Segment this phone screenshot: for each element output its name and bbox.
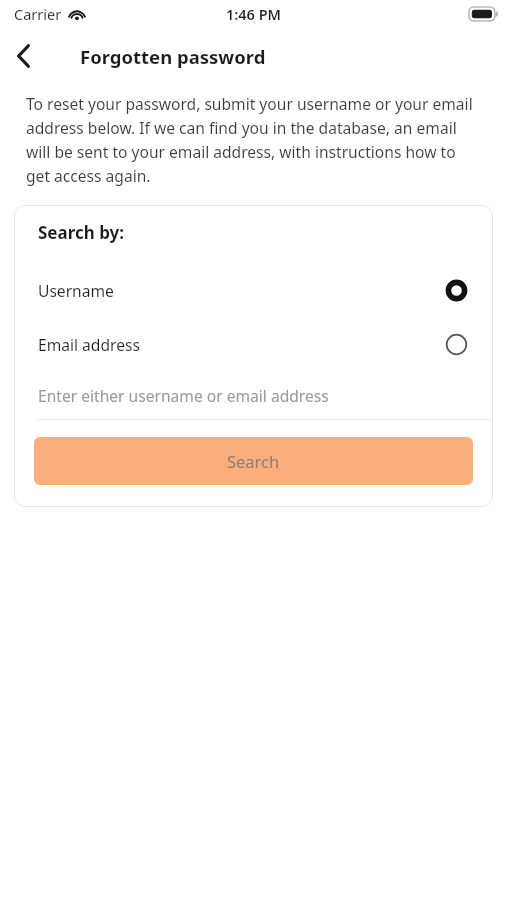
button[interactable]: Username xyxy=(14,263,493,317)
button[interactable]: Search xyxy=(34,437,473,485)
staticText: Email address xyxy=(38,334,140,355)
staticText: Search xyxy=(227,450,280,472)
button[interactable]: Email address xyxy=(14,317,493,371)
button[interactable]: Back xyxy=(0,32,48,80)
staticText: Enter either username or email address xyxy=(38,385,329,406)
staticText: 1:46 PM xyxy=(226,4,282,24)
button[interactable]: Enter either username or email address xyxy=(14,371,493,419)
staticText: To reset your password, submit your user… xyxy=(26,93,481,186)
staticText: Carrier xyxy=(14,4,62,24)
staticText: Search by: xyxy=(38,221,125,244)
staticText: Forgotten password xyxy=(80,44,266,69)
staticText: Username xyxy=(38,280,114,301)
